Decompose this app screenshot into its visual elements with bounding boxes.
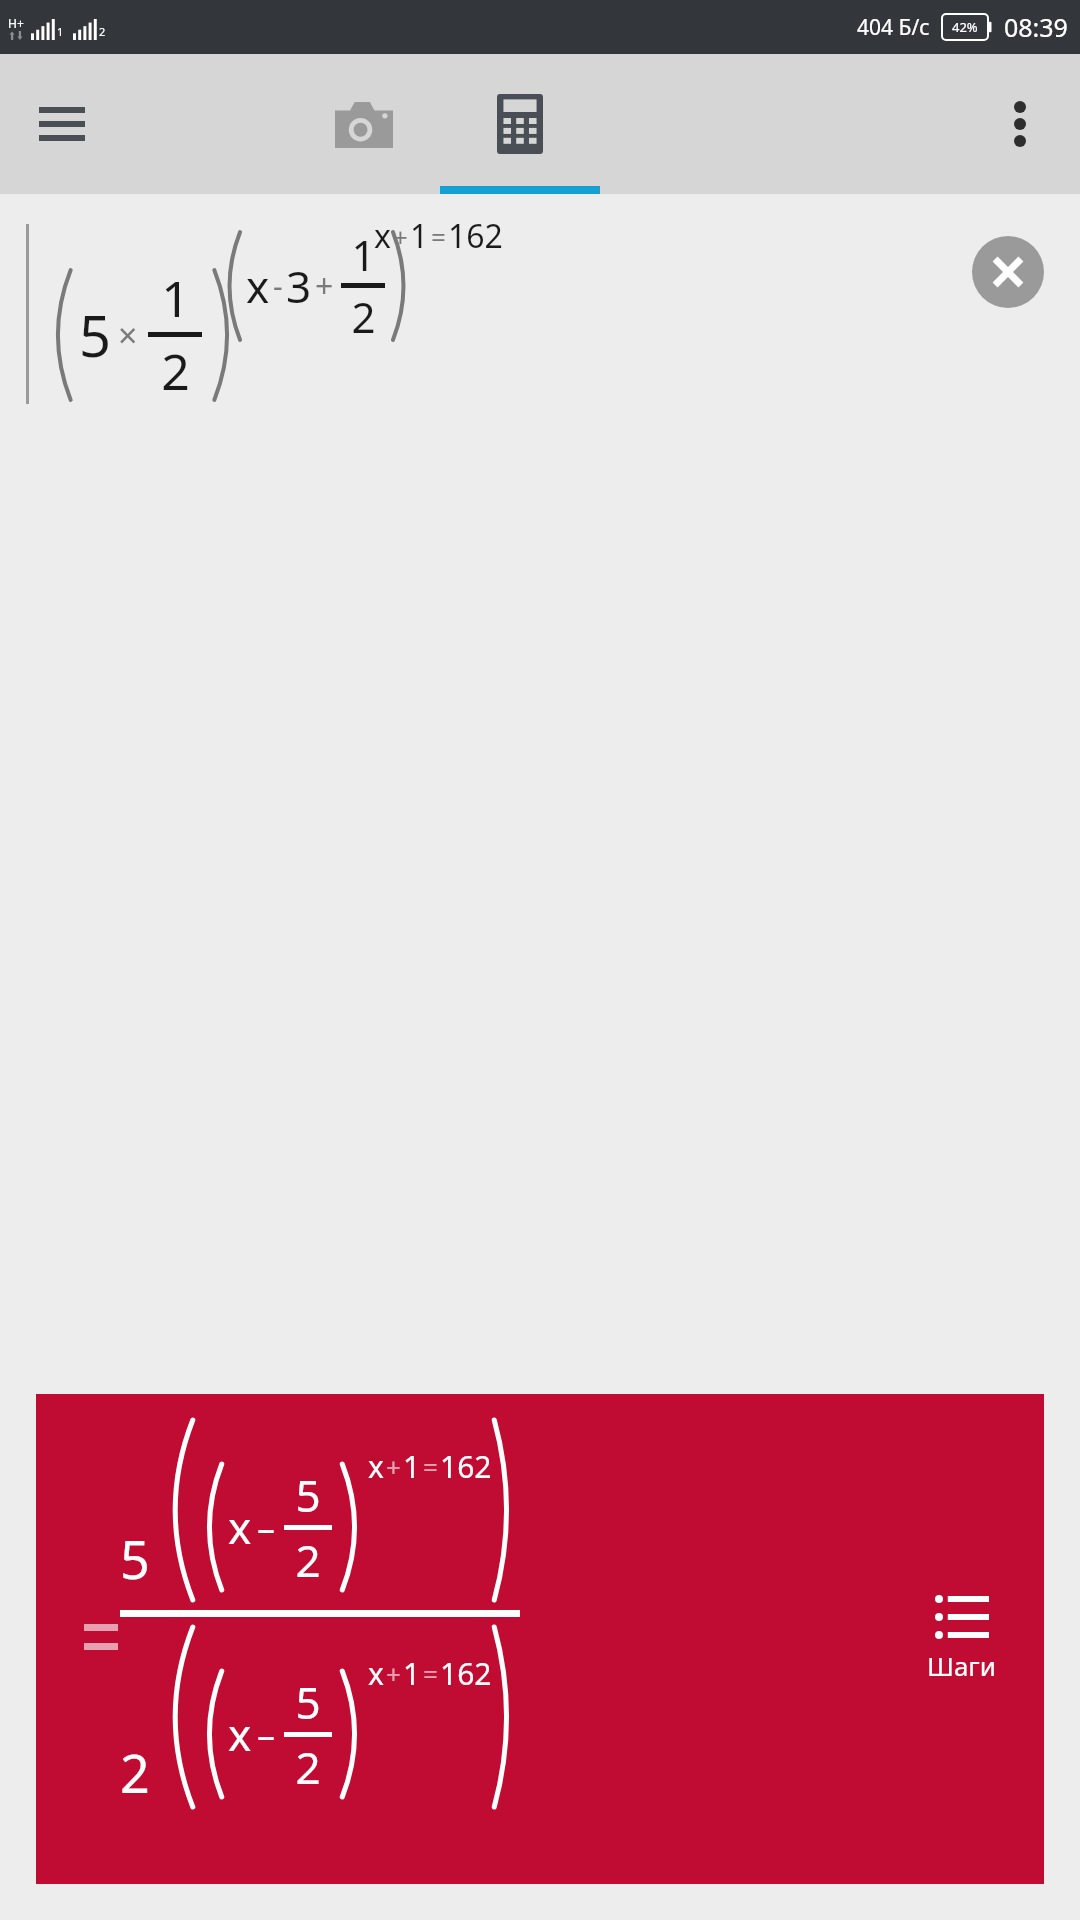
staticText: x (246, 256, 270, 316)
staticText: = (423, 1656, 438, 1691)
staticText: 1 (403, 1653, 421, 1694)
button[interactable]: Шаги (927, 1596, 996, 1683)
staticText: x (374, 214, 391, 258)
staticText: 162 (440, 1446, 492, 1487)
staticText: Шаги (927, 1648, 996, 1683)
staticText: x (368, 1653, 384, 1694)
staticText: + (393, 219, 408, 254)
button[interactable]: More options (978, 82, 1062, 166)
button[interactable]: Camera (320, 80, 408, 168)
button[interactable]: Clear (972, 236, 1044, 308)
staticText: + (386, 1449, 401, 1484)
staticText: 08:39 (1004, 10, 1068, 44)
staticText: 1 (403, 1446, 421, 1487)
staticText: 2 (161, 337, 190, 405)
button[interactable]: Menu (20, 82, 104, 166)
staticText: 5 (120, 1523, 150, 1594)
staticText: 2 (120, 1737, 150, 1808)
staticText: 2 (99, 24, 106, 39)
staticText: = (423, 1449, 438, 1484)
staticText: H+ (8, 15, 24, 31)
staticText: 1 (410, 214, 429, 258)
staticText: 5 (295, 1465, 321, 1525)
staticText: + (315, 264, 334, 308)
staticText: 1 (351, 226, 376, 283)
staticText: x (228, 1704, 252, 1764)
button[interactable]: Calculator (476, 80, 564, 168)
staticText: x (368, 1446, 384, 1487)
staticText: 5 (295, 1672, 321, 1732)
staticText: – (257, 1503, 275, 1552)
staticText: 162 (448, 214, 503, 258)
staticText: 1 (57, 24, 64, 39)
button[interactable]: 5 (36, 1394, 1044, 1884)
staticText: 162 (440, 1653, 492, 1694)
staticText: 42% (952, 18, 978, 36)
staticText: x (228, 1497, 252, 1557)
staticText: 5 (79, 297, 112, 373)
staticText: + (386, 1656, 401, 1691)
staticText: 2 (351, 288, 376, 345)
staticText: 3 (286, 256, 312, 316)
staticText: = (431, 219, 446, 254)
staticText: - (273, 265, 283, 306)
staticText: 2 (295, 1737, 321, 1797)
staticText: 2 (295, 1530, 321, 1590)
staticText: – (257, 1710, 275, 1759)
staticText: 404 Б/с (857, 13, 930, 42)
staticText: 1 (161, 264, 190, 332)
staticText: × (118, 312, 138, 358)
